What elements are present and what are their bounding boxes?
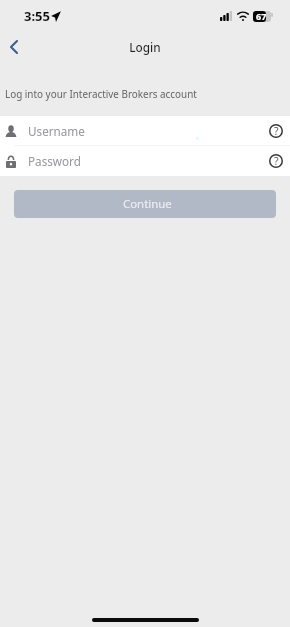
- staticText: ?: [274, 124, 279, 138]
- button[interactable]: Username: [0, 116, 290, 145]
- button[interactable]: Help: [263, 118, 289, 144]
- button[interactable]: Help: [263, 148, 289, 174]
- staticText: Log into your Interactive Brokers accoun…: [5, 87, 197, 100]
- button[interactable]: Back: [2, 35, 26, 59]
- staticText: Username: [28, 123, 85, 139]
- staticText: ?: [274, 154, 279, 168]
- staticText: Password: [28, 153, 81, 169]
- staticText: 3:55: [24, 7, 50, 25]
- staticText: 67: [256, 11, 266, 21]
- button[interactable]: Continue: [14, 190, 276, 218]
- staticText: Continue: [123, 196, 172, 212]
- button[interactable]: Password: [0, 146, 290, 176]
- staticText: Login: [0, 39, 290, 55]
